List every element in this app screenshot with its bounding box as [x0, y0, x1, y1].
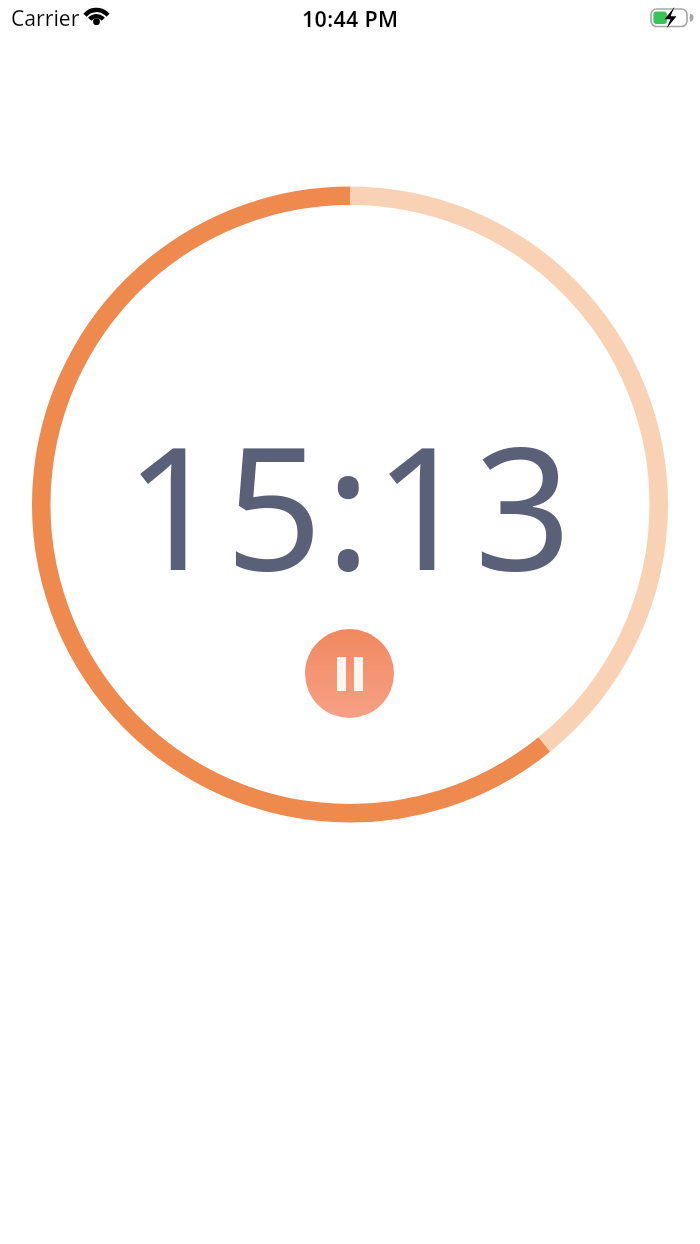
staticText: 10:44 PM	[302, 4, 399, 33]
button[interactable]	[305, 629, 394, 718]
staticText: 15:13	[125, 388, 575, 620]
staticText: Carrier	[11, 4, 80, 33]
